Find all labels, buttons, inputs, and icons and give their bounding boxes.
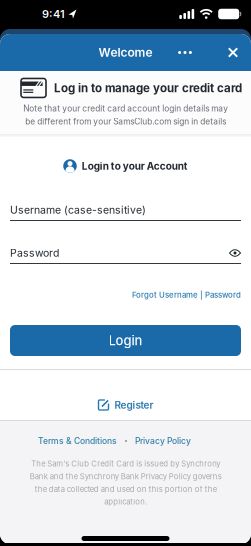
button[interactable]: Register xyxy=(97,398,153,412)
staticText: Forgot Username | Password xyxy=(132,290,241,300)
button[interactable]: More options xyxy=(173,40,197,64)
staticText: Password xyxy=(10,247,59,259)
staticText: Log in to manage your credit card xyxy=(54,81,242,95)
button[interactable]: Privacy Policy xyxy=(135,436,191,446)
staticText: Terms & Conditions xyxy=(38,436,117,446)
staticText: Welcome xyxy=(98,45,152,60)
staticText: Note that your credit card account login… xyxy=(23,103,228,127)
button[interactable]: Forgot Username | Password xyxy=(132,290,241,300)
button[interactable]: Terms & Conditions xyxy=(38,436,117,446)
staticText: Login to your Account xyxy=(82,160,188,172)
staticText: Username (case-sensitive) xyxy=(10,204,146,216)
staticText: Register xyxy=(114,399,153,411)
button[interactable]: Close xyxy=(222,40,244,64)
button[interactable]: Login xyxy=(10,325,241,356)
button[interactable]: Password xyxy=(10,247,241,264)
staticText: 9:41 xyxy=(42,7,65,21)
staticText: The Sam's Club Credit Card is issued by … xyxy=(29,459,221,506)
button[interactable]: Show password xyxy=(229,249,241,257)
staticText: Privacy Policy xyxy=(135,436,191,446)
button[interactable]: Username (case-sensitive) xyxy=(10,204,241,221)
staticText: Login xyxy=(108,333,142,348)
